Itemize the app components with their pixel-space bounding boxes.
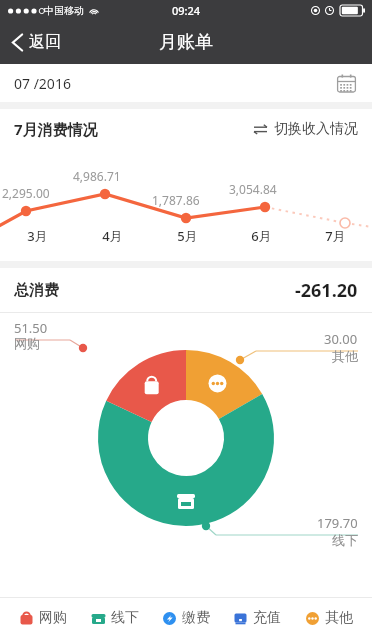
staticText: 4月 [102, 227, 123, 245]
staticText: 月账单 [159, 31, 213, 54]
staticText: 网购 [14, 335, 40, 351]
staticText: 51.50 [14, 319, 48, 337]
staticText: 09:24 [172, 3, 201, 18]
staticText: 缴费 [182, 609, 210, 627]
staticText: 线下 [332, 532, 358, 548]
staticText: 线下 [111, 609, 139, 627]
button[interactable]: 07 /2016 [0, 64, 372, 102]
staticText: 7月消费情况 [14, 119, 98, 139]
staticText: 充值 [253, 609, 281, 627]
other: Select month [337, 74, 356, 93]
button[interactable]: 切换收入情况 [243, 114, 372, 144]
staticText: 4,986.71 [73, 168, 121, 184]
staticText: 网购 [39, 609, 67, 627]
staticText: 切换收入情况 [274, 120, 358, 138]
staticText: 其他 [332, 348, 358, 364]
staticText: 5月 [177, 227, 198, 245]
button[interactable]: 充值 [229, 603, 285, 633]
staticText: 中国移动 [44, 4, 84, 17]
staticText: 3,054.84 [229, 181, 277, 197]
staticText: 3月 [27, 227, 48, 245]
button[interactable]: 线下 [87, 603, 143, 633]
staticText: 1,787.86 [152, 192, 200, 208]
staticText: 其他 [325, 609, 353, 627]
staticText: 179.70 [317, 514, 358, 532]
staticText: 总消费 [14, 281, 59, 300]
staticText: 6月 [251, 227, 272, 245]
button[interactable]: 返回 [0, 24, 75, 60]
button[interactable]: 其他 [301, 603, 357, 633]
staticText: 返回 [29, 32, 61, 52]
staticText: 30.00 [324, 330, 358, 348]
staticText: 2,295.00 [2, 185, 50, 201]
staticText: 07 /2016 [14, 74, 71, 93]
button[interactable]: 缴费 [158, 603, 214, 633]
staticText: -261.20 [295, 278, 358, 303]
button[interactable]: 网购 [15, 603, 71, 633]
staticText: 7月 [325, 227, 346, 245]
